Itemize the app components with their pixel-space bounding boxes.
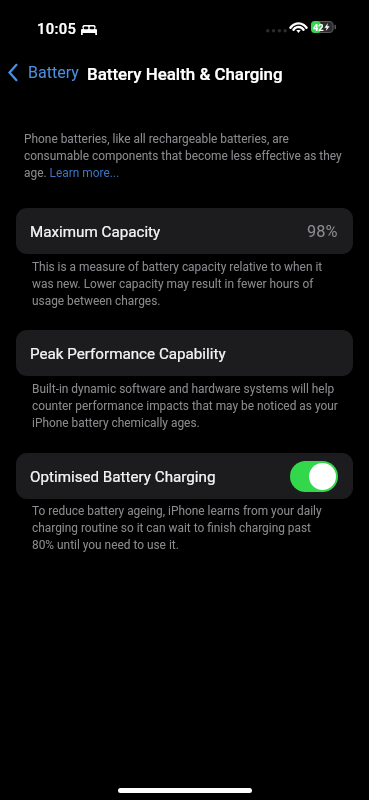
staticText: Phone batteries, like all rechargeable b…: [24, 130, 342, 181]
staticText: Battery: [28, 63, 79, 82]
staticText: Peak Performance Capability: [30, 345, 226, 363]
staticText: Battery Health & Charging: [87, 64, 283, 84]
staticText: Maximum Capacity: [30, 223, 161, 241]
staticText: 42: [313, 22, 324, 33]
button[interactable]: Peak Performance Capability: [16, 330, 353, 376]
button[interactable]: Optimised Battery Charging: [16, 453, 353, 499]
staticText: 98%: [307, 222, 338, 241]
button[interactable]: Maximum Capacity: [16, 208, 353, 254]
staticText: This is a measure of battery capacity re…: [32, 258, 323, 309]
staticText: Built-in dynamic software and hardware s…: [32, 380, 338, 431]
button[interactable]: Battery: [9, 63, 79, 82]
staticText: 10:05: [37, 20, 77, 37]
staticText: Optimised Battery Charging: [30, 468, 216, 486]
staticText: To reduce battery ageing, iPhone learns …: [32, 502, 322, 553]
button[interactable]: Optimised Battery Charging: [290, 461, 338, 492]
